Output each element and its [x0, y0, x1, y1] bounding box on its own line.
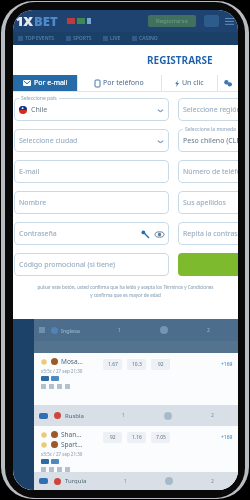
staticText: REGISTRARSE [147, 53, 213, 67]
button[interactable]: Registrarse [148, 15, 196, 27]
staticText: Por teléfono [103, 78, 144, 88]
button[interactable]: +169 [221, 434, 233, 441]
button[interactable]: Turquía [34, 472, 238, 490]
staticText: Chile [31, 105, 48, 115]
button[interactable]: Un clic [162, 75, 217, 91]
button[interactable]: Contraseña [14, 222, 169, 245]
staticText: Turquía [65, 477, 87, 485]
staticText: Inglesa [61, 327, 80, 334]
button[interactable]: 10.3 [127, 359, 146, 370]
staticText: Número de teléfono [183, 167, 238, 177]
button[interactable]: 1.67 [103, 359, 122, 370]
staticText: 2 [207, 327, 210, 334]
button[interactable]: LIVE [102, 35, 122, 42]
button[interactable]: Shan... [34, 426, 238, 472]
staticText: 1 [124, 478, 127, 485]
staticText: 1 [122, 412, 125, 419]
staticText: x5:5c / 27 sep 21:30 [41, 368, 83, 374]
button[interactable]: Peso chileno (CLP) [178, 129, 238, 152]
staticText: Shan... [61, 430, 82, 439]
button[interactable]: TOP EVENTS [17, 35, 56, 42]
button[interactable]: 92 [151, 359, 170, 370]
staticText: pulsar este botón, usted confirma que ha… [19, 284, 232, 290]
button[interactable]: 7.05 [151, 432, 170, 443]
button[interactable]: 92 [103, 432, 122, 443]
staticText: 1X [16, 12, 34, 30]
staticText: 2 [211, 412, 214, 419]
button[interactable]: Mosa... [34, 353, 238, 405]
staticText: Repita la contraseña [183, 229, 238, 239]
button[interactable]: CASINO [131, 35, 159, 42]
button[interactable]: E-mail [14, 160, 169, 183]
staticText: Spart... [61, 440, 83, 449]
staticText: E-mail [19, 167, 40, 177]
staticText: Peso chileno (CLP) [183, 136, 238, 146]
button[interactable]: Rusbla [34, 405, 238, 426]
button[interactable]: Seleccione ciudad [14, 129, 169, 152]
staticText: 1 [118, 327, 121, 334]
staticText: Por e-mail [34, 78, 68, 88]
staticText: x5:5c / 27 sep 21:30 [41, 451, 83, 457]
button[interactable]: Número de teléfono [178, 160, 238, 183]
staticText: Mosa... [61, 357, 83, 366]
staticText: 7.05 [156, 434, 166, 441]
staticText: 92 [158, 361, 164, 368]
button[interactable] [178, 253, 238, 276]
staticText: BET [34, 12, 58, 30]
button[interactable]: Seleccione región [178, 98, 238, 121]
staticText: LIVE [110, 35, 121, 42]
button[interactable]: +169 [221, 361, 233, 368]
staticText: Seleccione región [183, 105, 238, 115]
button[interactable]: Por e-mail [13, 75, 77, 91]
staticText: y confirma que es mayor de edad [19, 292, 232, 298]
staticText: SPORTS [73, 35, 92, 42]
staticText: 92 [110, 434, 116, 441]
staticText: Nombre [19, 198, 47, 208]
staticText: 1.67 [108, 361, 118, 368]
staticText: TOP EVENTS [25, 35, 55, 42]
button[interactable]: Chile [14, 98, 169, 121]
staticText: Seleccione la moneda [185, 126, 236, 133]
staticText: CASINO [139, 35, 158, 42]
button[interactable]: Código promocional (si tiene) [14, 253, 169, 276]
staticText: Contraseña [19, 229, 57, 239]
button[interactable]: Sus apellidos [178, 191, 238, 214]
staticText: 1.16 [132, 434, 142, 441]
button[interactable]: SPORTS [65, 35, 93, 42]
staticText: Seleccione ciudad [19, 136, 78, 146]
staticText: Registrarse [156, 17, 188, 25]
button[interactable]: Menú [224, 16, 235, 27]
button[interactable]: Inglesa [34, 319, 238, 341]
staticText: 2 [211, 478, 214, 485]
button[interactable]: Repita la contraseña [178, 222, 238, 245]
staticText: Un clic [182, 78, 204, 88]
staticText: Rusbla [65, 412, 84, 420]
staticText: Sus apellidos [183, 198, 226, 208]
staticText: Seleccione país [21, 95, 57, 102]
button[interactable]: 1.16 [127, 432, 146, 443]
staticText: Código promocional (si tiene) [19, 260, 116, 270]
staticText: 10.3 [132, 361, 142, 368]
button[interactable]: Redes sociales [218, 75, 238, 91]
button[interactable]: Nombre [14, 191, 169, 214]
button[interactable]: Por teléfono [78, 75, 161, 91]
